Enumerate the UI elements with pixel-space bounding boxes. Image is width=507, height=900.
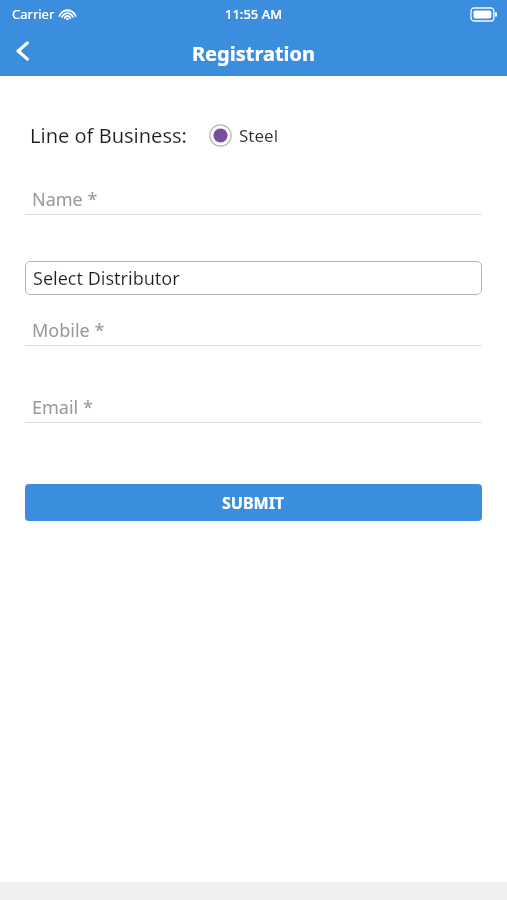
staticText: Carrier <box>12 5 55 23</box>
staticText: Mobile * <box>32 318 105 343</box>
button[interactable]: Back <box>0 28 46 74</box>
staticText: 11:55 AM <box>225 5 283 23</box>
button[interactable]: Steel <box>209 124 279 147</box>
staticText: Email * <box>32 395 93 420</box>
button[interactable]: Select Distributor <box>25 261 482 295</box>
button[interactable]: Name * <box>0 184 507 215</box>
staticText: Steel <box>239 124 279 147</box>
button[interactable]: SUBMIT <box>25 484 482 521</box>
button[interactable]: Mobile * <box>0 315 507 346</box>
staticText: SUBMIT <box>222 492 285 514</box>
staticText: Registration <box>192 40 316 67</box>
staticText: Line of Business: <box>30 122 187 149</box>
staticText: Name * <box>32 187 98 212</box>
staticText: Select Distributor <box>33 266 180 291</box>
button[interactable]: Email * <box>0 392 507 423</box>
